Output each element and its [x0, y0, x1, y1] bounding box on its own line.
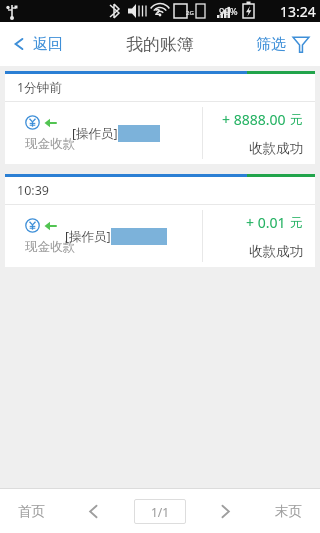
button[interactable]: 返回 — [0, 22, 75, 66]
staticText: 我的账簿 — [126, 34, 194, 55]
staticText: + 0.01 — [246, 213, 286, 232]
staticText: 2 — [155, 5, 161, 17]
staticText: 元 — [290, 112, 303, 128]
staticText: 元 — [290, 215, 303, 231]
staticText: 1分钟前 — [17, 79, 62, 96]
staticText: 收款成功 — [249, 140, 303, 157]
button[interactable]: 下一页 — [194, 489, 257, 533]
staticText: 99% — [219, 5, 238, 18]
staticText: 现金收款 — [25, 136, 75, 152]
staticText: [操作员] — [65, 228, 111, 245]
button[interactable]: 首页 — [0, 489, 62, 533]
button[interactable]: 上一页 — [62, 489, 125, 533]
staticText: 收款成功 — [249, 243, 303, 260]
staticText: 末页 — [275, 503, 302, 520]
button[interactable]: 10:39 — [5, 174, 315, 267]
staticText: 首页 — [18, 503, 45, 520]
staticText: [操作员] — [72, 125, 118, 142]
staticText: 10:39 — [17, 182, 49, 199]
button[interactable]: 末页 — [257, 489, 320, 533]
staticText: + 8888.00 — [222, 110, 286, 129]
button[interactable]: 1分钟前 — [5, 71, 315, 164]
button[interactable]: 1/1 — [134, 499, 186, 524]
button[interactable]: 筛选 — [246, 22, 320, 66]
staticText: 2G — [186, 9, 194, 17]
staticText: 返回 — [33, 35, 63, 54]
staticText: 筛选 — [256, 35, 286, 54]
staticText: 13:24 — [280, 2, 316, 21]
staticText: 现金收款 — [25, 239, 75, 255]
staticText: 1/1 — [151, 504, 170, 520]
